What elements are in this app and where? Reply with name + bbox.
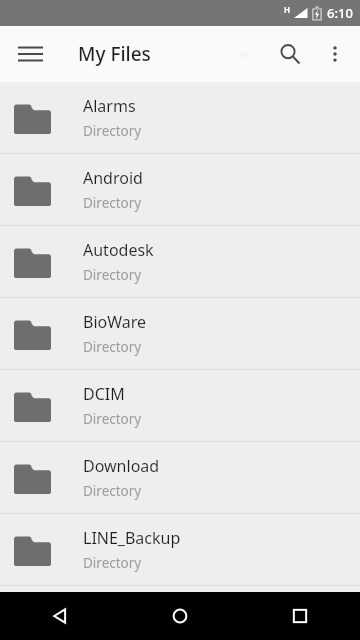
staticText: Download [83,455,160,477]
staticText: My Files [78,41,151,67]
staticText: Directory [83,554,142,572]
staticText: BioWare [83,311,147,333]
button[interactable]: Alarms [0,82,360,153]
staticText: Autodesk [83,239,154,261]
staticText: Directory [83,482,142,500]
button[interactable]: Open navigation drawer [6,30,54,78]
button[interactable]: Download [0,442,360,513]
staticText: Directory [83,410,142,428]
button[interactable]: More options [314,33,356,75]
button[interactable]: LINE_Backup [0,514,360,585]
staticText: LINE_Backup [83,527,181,549]
staticText: Android [83,167,143,189]
staticText: H [284,4,291,15]
staticText: Directory [83,266,142,284]
button[interactable]: BioWare [0,298,360,369]
staticText: Directory [83,338,142,356]
staticText: 6:10 [327,4,353,22]
button[interactable]: Recent apps [240,592,360,640]
staticText: Directory [83,122,142,140]
button[interactable]: Android [0,154,360,225]
staticText: DCIM [83,383,125,405]
button[interactable]: Back [0,592,120,640]
button[interactable]: Home [120,592,240,640]
button[interactable]: Search [266,30,314,78]
button[interactable]: DCIM [0,370,360,441]
button[interactable]: Autodesk [0,226,360,297]
staticText: Directory [83,194,142,212]
staticText: Alarms [83,95,136,117]
